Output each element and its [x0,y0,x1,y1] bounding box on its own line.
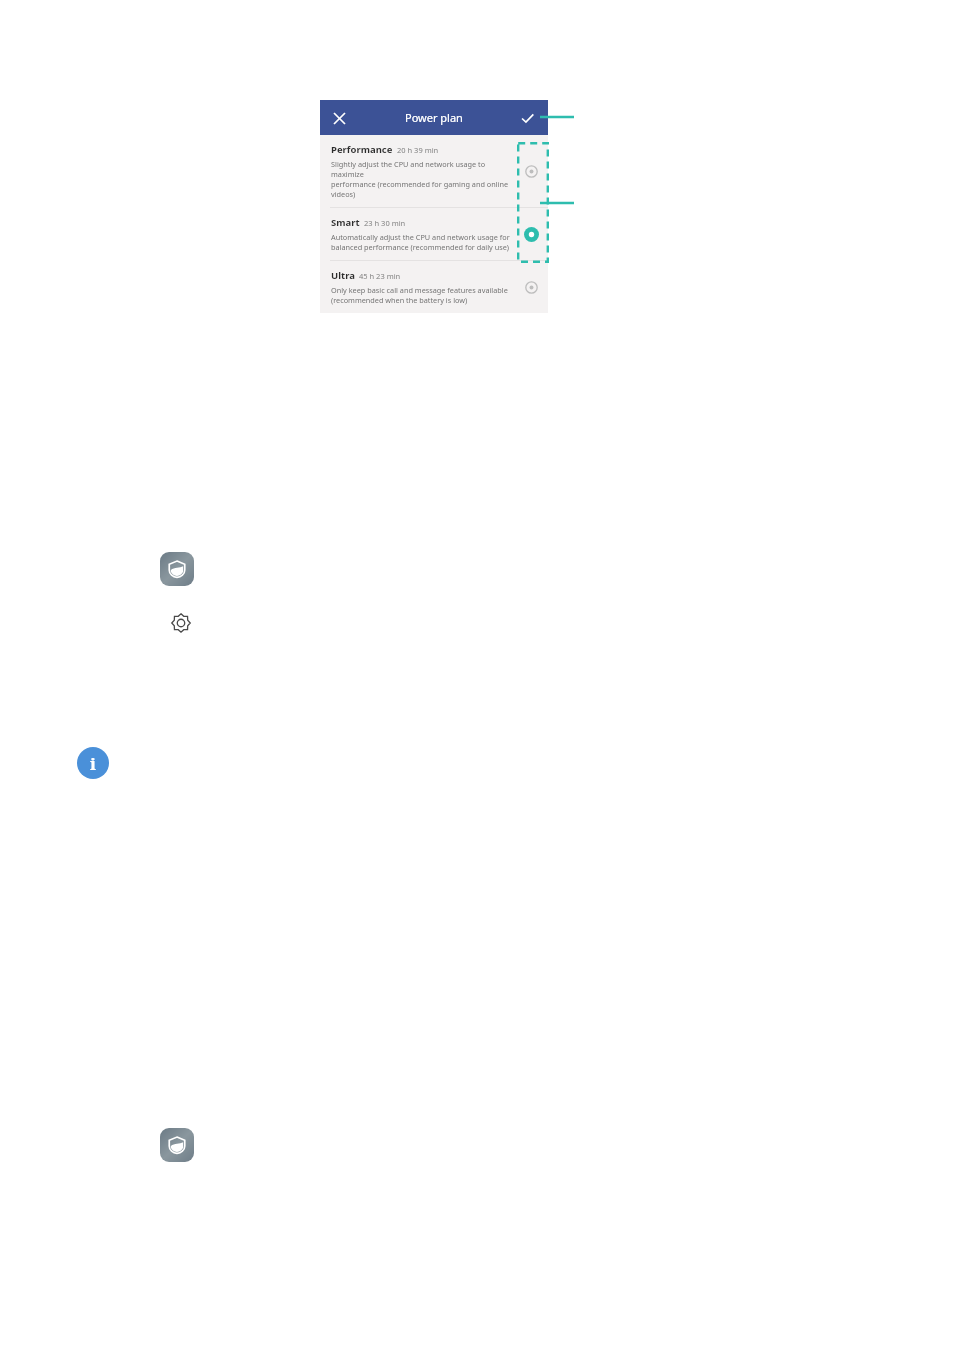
button[interactable]: Close [328,107,350,129]
button[interactable]: Phone Manager [160,552,194,586]
button[interactable]: Settings [167,609,195,637]
staticText: Ultra [331,269,355,282]
staticText: Power plan [405,110,463,125]
staticText: (recommended when the battery is low) [331,295,468,305]
staticText: Slightly adjust the CPU and network usag… [331,159,518,179]
staticText: 45 h 23 min [359,271,401,281]
staticText: 23 h 30 min [364,218,406,228]
button[interactable]: Select Ultra [518,274,544,300]
staticText: performance (recommended for gaming and … [331,179,518,199]
staticText: Only keep basic call and message feature… [331,285,508,295]
button[interactable]: Performance [320,135,548,207]
staticText: Performance [331,143,393,156]
staticText: Smart [331,216,360,229]
button[interactable]: Confirm [516,107,538,129]
button[interactable]: Smart [320,208,548,260]
button[interactable]: Information [77,747,109,779]
staticText: i [90,752,96,775]
staticText: 20 h 39 min [397,145,439,155]
button[interactable]: Ultra [320,261,548,313]
staticText: Automatically adjust the CPU and network… [331,232,510,242]
button[interactable]: Select Smart [518,221,544,247]
button[interactable]: Select Performance [518,158,544,184]
staticText: balanced performance (recommended for da… [331,242,510,252]
button[interactable]: Phone Manager [160,1128,194,1162]
